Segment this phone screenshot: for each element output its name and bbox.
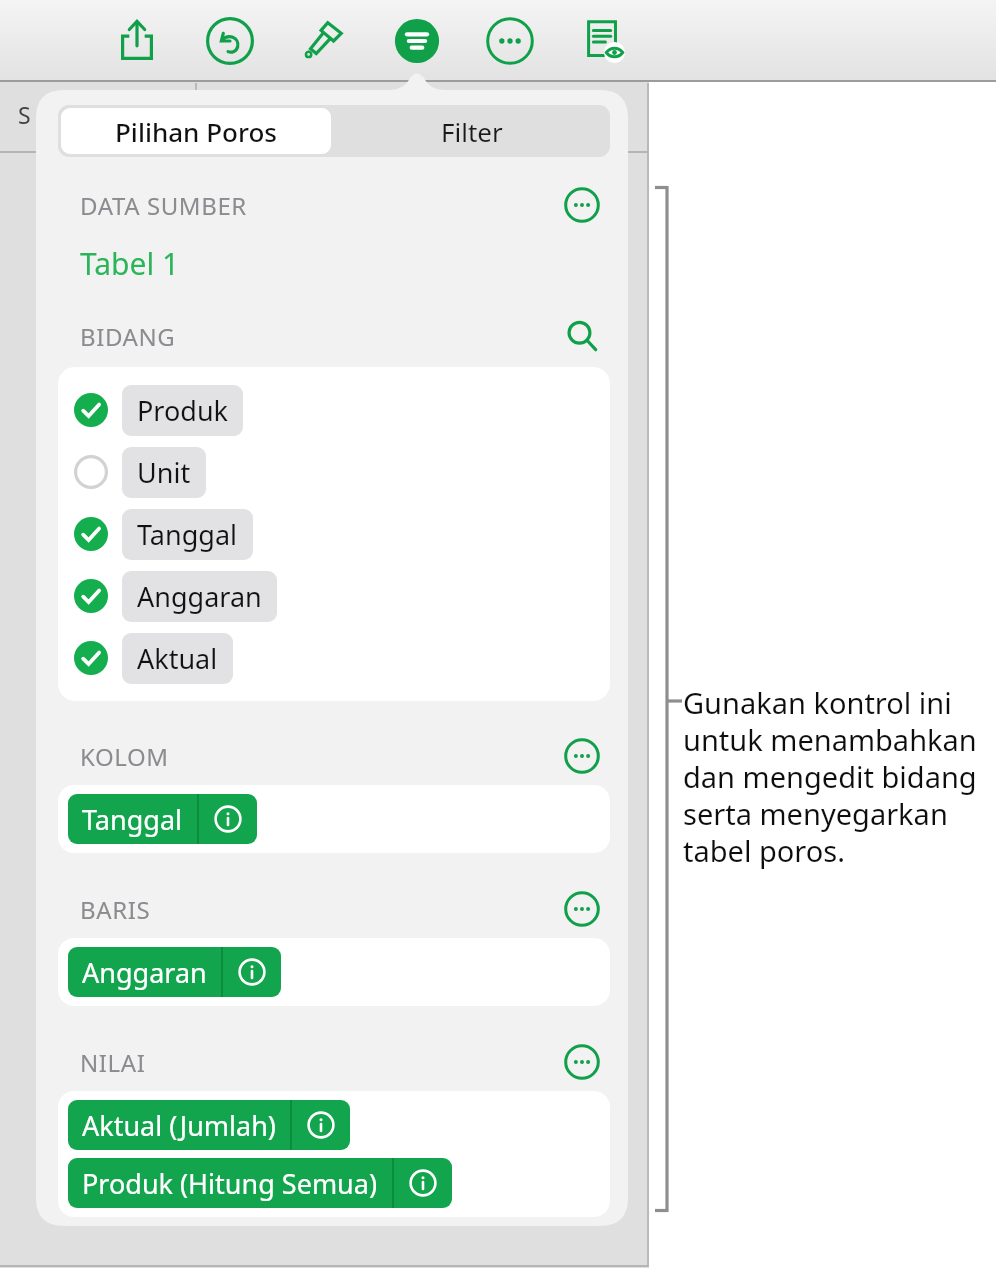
- staticText: Produk (Hitung Semua): [82, 1165, 378, 1202]
- staticText: BIDANG: [80, 320, 176, 353]
- staticText: Tabel 1: [80, 243, 180, 284]
- button[interactable]: More options: [481, 12, 539, 70]
- staticText: NILAI: [80, 1046, 146, 1079]
- button[interactable]: Search fields: [560, 316, 604, 356]
- button[interactable]: Aktual: [58, 627, 610, 689]
- staticText: Tanggal: [82, 801, 183, 838]
- button[interactable]: Pilihan Poros: [61, 108, 331, 154]
- button[interactable]: Produk: [58, 379, 610, 441]
- button[interactable]: Tabel 1: [80, 243, 180, 284]
- button[interactable]: More options for DATA SUMBER: [560, 185, 604, 225]
- staticText: Pilihan Poros: [115, 114, 277, 149]
- button[interactable]: Organize: [388, 12, 446, 70]
- staticText: Gunakan kontrol ini untuk menambahkan da…: [683, 683, 979, 871]
- button[interactable]: More options for KOLOM: [560, 736, 604, 776]
- staticText: Aktual (Jumlah): [82, 1107, 276, 1144]
- staticText: DATA SUMBER: [80, 189, 247, 222]
- button[interactable]: Filter: [334, 105, 610, 157]
- button[interactable]: Anggaran: [68, 947, 281, 997]
- button[interactable]: Aktual (Jumlah): [68, 1100, 350, 1150]
- button[interactable]: Anggaran: [58, 565, 610, 627]
- button[interactable]: Tanggal: [58, 503, 610, 565]
- staticText: Anggaran: [82, 954, 207, 991]
- staticText: S: [18, 99, 31, 130]
- staticText: BARIS: [80, 893, 151, 926]
- staticText: Filter: [441, 114, 503, 149]
- staticText: KOLOM: [80, 740, 169, 773]
- staticText: Tanggal: [137, 516, 238, 553]
- button[interactable]: Tanggal: [68, 794, 257, 844]
- button[interactable]: Document setup: [574, 12, 632, 70]
- button[interactable]: Share: [108, 12, 166, 70]
- button[interactable]: Undo: [201, 12, 259, 70]
- staticText: Produk: [137, 392, 228, 429]
- button[interactable]: More options for NILAI: [560, 1042, 604, 1082]
- staticText: Unit: [137, 454, 191, 491]
- button[interactable]: Unit: [58, 441, 610, 503]
- button[interactable]: More options for BARIS: [560, 889, 604, 929]
- button[interactable]: Format: [294, 12, 352, 70]
- staticText: Anggaran: [137, 578, 262, 615]
- button[interactable]: Produk (Hitung Semua): [68, 1158, 452, 1208]
- staticText: Aktual: [137, 640, 218, 677]
